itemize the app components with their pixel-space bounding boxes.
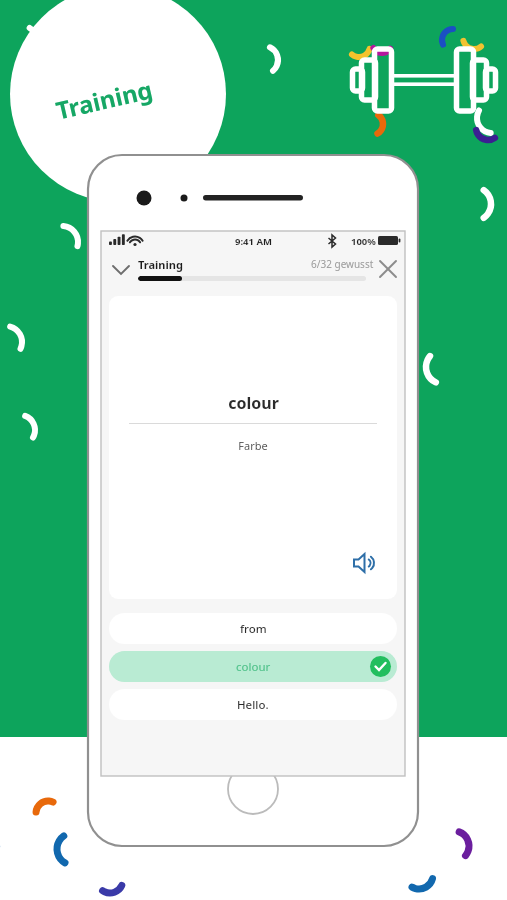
staticText: Training xyxy=(52,72,155,127)
staticText: Hello. xyxy=(237,697,269,713)
button[interactable]: Aussprache anhören xyxy=(350,547,382,579)
button[interactable]: from xyxy=(109,613,397,644)
staticText: colour xyxy=(236,659,271,675)
button[interactable]: Minimieren xyxy=(106,254,136,284)
staticText: 100% xyxy=(351,235,376,248)
staticText: Farbe xyxy=(238,438,268,453)
button[interactable]: colour xyxy=(109,296,397,599)
button[interactable]: colour xyxy=(109,651,397,682)
button[interactable]: Schließen xyxy=(373,254,403,284)
staticText: from xyxy=(240,621,267,637)
button[interactable]: Hello. xyxy=(109,689,397,720)
staticText: Training xyxy=(138,257,183,272)
staticText: 6/32 gewusst xyxy=(311,257,374,271)
staticText: colour xyxy=(228,392,279,414)
staticText: 9:41 AM xyxy=(235,235,272,248)
